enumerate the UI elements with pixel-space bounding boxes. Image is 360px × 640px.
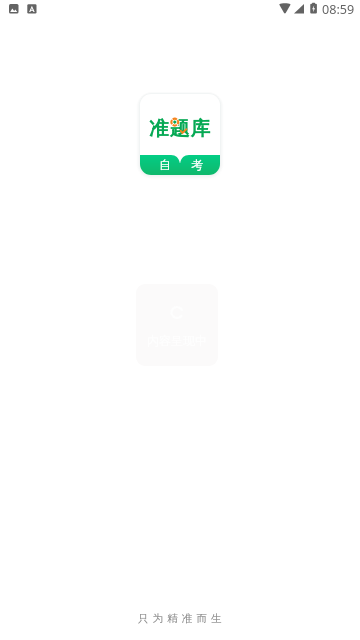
button[interactable]: 准题库 自考 app logo <box>140 94 220 175</box>
staticText: 考 <box>191 157 203 172</box>
staticText: 自 <box>159 157 171 172</box>
staticText: 只为精准而生 <box>138 612 226 625</box>
staticText: 准题库 <box>149 116 212 141</box>
staticText: 08:59 <box>322 1 355 18</box>
